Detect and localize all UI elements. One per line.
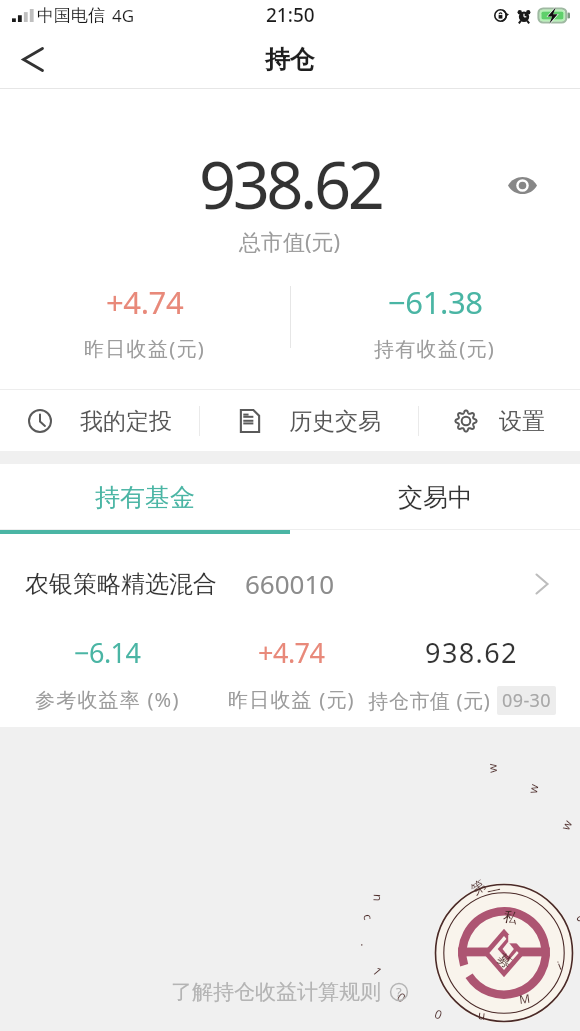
staticText: . [539,981,553,995]
staticText: 4G [112,4,135,27]
staticText: 交易中 [398,482,473,513]
button[interactable]: Back [0,30,68,89]
staticText: 660010 [245,566,335,601]
staticText: 09-30 [502,688,551,713]
staticText: 我的定投 [80,407,172,436]
staticText: 私 [505,893,523,913]
staticText: n [440,946,456,954]
staticText: 21:50 [266,2,315,28]
staticText: 中国电信 [37,5,105,26]
staticText: 一 [484,893,502,913]
staticText: 农银策略精选混合 [25,569,217,599]
button[interactable]: 历史交易 [200,390,418,452]
button[interactable]: 我的定投 [0,390,199,452]
staticText: u [492,1000,502,1016]
staticText: 0 [463,989,478,1007]
staticText: 昨日收益(元) [84,335,206,362]
staticText: +4.74 [258,634,325,671]
staticText: 1 [452,980,469,996]
staticText: 总市值(元) [239,226,341,256]
staticText: 设置 [499,407,545,436]
staticText: 参考收益率 (%) [35,686,180,713]
staticText: −61.38 [388,281,483,323]
staticText: M [504,999,517,1017]
staticText: 0 [477,996,490,1014]
staticText: . [445,972,461,982]
staticText: 938.62 [199,140,382,229]
button[interactable]: 了解持仓收益计算规则 [171,979,409,1005]
staticText: 昨日收益 (元) [228,686,355,713]
staticText: i [519,997,529,1013]
staticText: 第 [463,900,485,922]
button[interactable]: 交易中 [290,464,580,530]
staticText: 募 [522,900,544,922]
staticText: c [441,958,457,967]
staticText: 持仓市值 (元) [368,687,490,714]
staticText: 持有基金 [95,482,195,513]
staticText: −6.14 [74,634,141,671]
button[interactable]: 持有基金 [0,464,290,530]
staticText: 持仓 [265,44,315,75]
staticText: 了解持仓收益计算规则 [171,979,381,1005]
button[interactable]: 农银策略精选混合 [0,534,580,727]
button[interactable]: Toggle balance visibility [502,165,542,205]
staticText: S [529,989,544,1007]
button[interactable]: 设置 [419,390,580,452]
staticText: 938.62 [368,634,575,671]
staticText: ? [396,983,402,1001]
staticText: 历史交易 [289,407,381,436]
staticText: w [551,945,567,955]
staticText: +4.74 [106,281,184,323]
staticText: 持有收益(元) [374,335,496,362]
staticText: w [549,956,567,969]
staticText: w [545,969,563,985]
